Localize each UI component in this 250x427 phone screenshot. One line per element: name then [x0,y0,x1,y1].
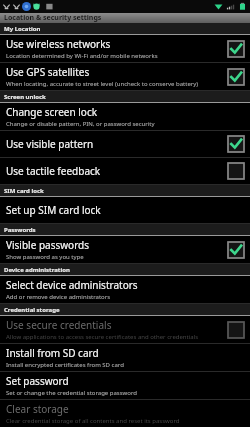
staticText: Use visible pattern [6,137,94,151]
staticText: My Location [4,25,41,33]
button[interactable]: Clear storage [0,400,250,427]
staticText: Install from SD card [6,346,99,360]
staticText: Select device administrators [6,278,138,292]
staticText: Use tactile feedback [6,164,101,178]
button[interactable]: Use GPS satellites [0,63,250,90]
staticText: Passwords [4,226,36,234]
button[interactable]: Visible passwords [0,236,250,263]
button[interactable]: Select device administrators [0,276,250,303]
staticText: Allow applications to access secure cert… [6,333,199,341]
button[interactable]: Set up SIM card lock [0,197,250,223]
button[interactable]: Install from SD card [0,344,250,371]
button[interactable]: Use tactile feedback [0,158,250,184]
button[interactable]: Use visible pattern [226,134,246,154]
button[interactable]: Use wireless networks [0,35,250,62]
button[interactable]: Use secure credentials [226,320,246,340]
button[interactable]: Use secure credentials [0,316,250,343]
button[interactable]: Visible passwords [226,240,246,260]
staticText: When locating, accurate to street level … [6,80,199,88]
staticText: Set or change the credential storage pas… [6,389,138,397]
staticText: Screen unlock [4,93,46,101]
staticText: Location determined by Wi-Fi and/or mobi… [6,52,158,60]
button[interactable]: Use GPS satellites [226,67,246,87]
button[interactable]: Use visible pattern [0,131,250,157]
staticText: Use wireless networks [6,37,111,51]
button[interactable]: Use tactile feedback [226,161,246,181]
staticText: Change or disable pattern, PIN, or passw… [6,120,155,128]
staticText: Show password as you type [6,253,84,261]
staticText: Use secure credentials [6,318,112,332]
staticText: Clear credential storage of all contents… [6,417,180,425]
staticText: Set password [6,374,69,388]
staticText: Change screen lock [6,105,98,119]
button[interactable]: Set password [0,372,250,399]
staticText: Visible passwords [6,238,90,252]
button[interactable]: Use wireless networks [226,39,246,59]
staticText: Location & security settings [4,13,102,23]
staticText: Device administration [4,266,70,274]
staticText: Install encrypted certificates from SD c… [6,361,124,369]
staticText: Set up SIM card lock [6,203,101,217]
staticText: Clear storage [6,402,69,416]
button[interactable]: Change screen lock [0,103,250,130]
staticText: SIM card lock [4,187,44,195]
staticText: Add or remove device administrators [6,293,111,301]
staticText: Credential storage [4,306,60,314]
staticText: Use GPS satellites [6,65,90,79]
